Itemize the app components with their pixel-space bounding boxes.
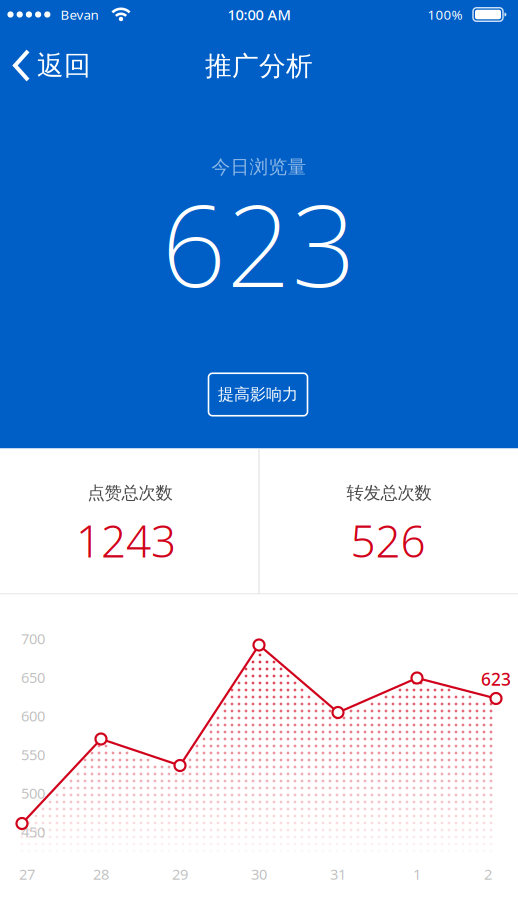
staticText: 650 (21, 667, 45, 687)
staticText: 今日浏览量 (211, 155, 306, 178)
staticText: 600 (21, 706, 45, 726)
staticText: 29 (172, 864, 188, 884)
staticText: Bevan (60, 6, 98, 23)
staticText: 27 (19, 864, 35, 884)
staticText: 10:00 AM (227, 5, 290, 24)
staticText: 转发总次数 (346, 482, 431, 504)
staticText: 550 (21, 745, 45, 764)
staticText: 100% (427, 6, 462, 23)
staticText: 450 (21, 822, 45, 842)
staticText: 623 (481, 667, 511, 690)
staticText: 推广分析 (205, 50, 313, 82)
staticText: 2 (484, 864, 492, 884)
staticText: 31 (330, 864, 346, 884)
button[interactable]: 返回 (0, 47, 100, 84)
button[interactable]: 提高影响力 (208, 373, 307, 416)
staticText: 28 (93, 864, 109, 884)
staticText: 30 (251, 864, 267, 884)
staticText: 500 (21, 783, 45, 803)
staticText: 提高影响力 (218, 385, 298, 404)
staticText: 526 (350, 511, 425, 570)
staticText: 1 (413, 864, 421, 884)
staticText: 623 (161, 168, 356, 318)
staticText: 返回 (37, 49, 91, 82)
staticText: 700 (21, 629, 45, 648)
staticText: 点赞总次数 (87, 482, 172, 504)
staticText: 1243 (76, 511, 176, 570)
